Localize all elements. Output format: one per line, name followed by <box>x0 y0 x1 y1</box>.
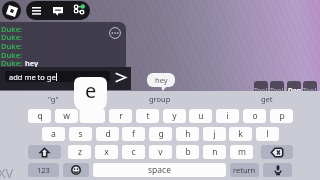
staticText: "g" <box>48 94 59 104</box>
staticText: 123 <box>37 165 50 175</box>
button[interactable]: h <box>176 127 199 141</box>
staticText: Duke: <box>1 24 23 34</box>
button[interactable]: Chat <box>47 1 68 20</box>
button[interactable]: Hotbar slot <box>254 81 268 92</box>
button[interactable]: Roblox menu <box>2 1 21 20</box>
staticText: x <box>104 146 109 158</box>
button[interactable]: m <box>230 145 253 159</box>
staticText: n <box>212 146 218 158</box>
staticText: f <box>132 128 135 140</box>
button[interactable]: a <box>42 127 65 141</box>
button[interactable]: b <box>176 145 199 159</box>
staticText: o <box>252 110 258 122</box>
button[interactable]: g <box>149 127 172 141</box>
button[interactable]: e <box>82 109 105 123</box>
button[interactable]: Hotbar slot <box>303 81 317 92</box>
staticText: Tool <box>303 86 317 92</box>
staticText: Duke: <box>1 50 23 60</box>
button[interactable]: Microphone <box>263 163 292 177</box>
button[interactable]: o <box>243 109 266 123</box>
staticText: p <box>279 110 285 122</box>
button[interactable]: Return <box>230 163 259 177</box>
button[interactable]: u <box>189 109 212 123</box>
staticText: w <box>63 110 70 122</box>
staticText: get <box>261 94 273 104</box>
button[interactable]: Backspace <box>261 145 293 159</box>
button[interactable]: l <box>256 127 279 141</box>
staticText: XV <box>0 164 14 180</box>
staticText: Dog <box>288 86 301 92</box>
button[interactable]: group <box>106 92 213 106</box>
button[interactable]: v <box>149 145 172 159</box>
staticText: u <box>198 110 204 122</box>
button[interactable]: x <box>95 145 118 159</box>
staticText: j <box>213 128 216 140</box>
staticText: t <box>146 110 150 122</box>
staticText: a <box>51 128 56 140</box>
staticText: m <box>238 146 246 158</box>
staticText: k <box>238 128 243 140</box>
button[interactable]: space <box>93 163 226 177</box>
button[interactable]: Send <box>112 69 128 85</box>
button[interactable]: c <box>122 145 145 159</box>
staticText: r <box>119 110 123 122</box>
staticText: hey <box>25 58 39 67</box>
button[interactable]: Hotbar slot <box>270 81 284 92</box>
staticText: z <box>78 146 82 158</box>
staticText: d <box>105 128 111 140</box>
staticText: y <box>172 110 177 122</box>
staticText: space <box>148 164 171 176</box>
staticText: l <box>266 128 269 140</box>
button[interactable]: q <box>28 109 51 123</box>
staticText: add me to ge <box>9 72 56 82</box>
button[interactable]: "g" <box>0 92 106 106</box>
staticText: Tool <box>270 86 284 92</box>
button[interactable]: add me to ge <box>5 71 110 82</box>
button[interactable]: i <box>216 109 239 123</box>
button[interactable]: n <box>203 145 226 159</box>
button[interactable]: Connections <box>68 1 90 20</box>
button[interactable]: j <box>203 127 226 141</box>
staticText: b <box>185 146 191 158</box>
staticText: g <box>158 128 164 140</box>
button[interactable]: d <box>96 127 119 141</box>
button[interactable]: f <box>122 127 145 141</box>
button[interactable]: Emoji <box>63 163 89 177</box>
button[interactable]: r <box>109 109 132 123</box>
staticText: return <box>233 165 256 175</box>
staticText: hey <box>155 75 168 85</box>
staticText: v <box>158 146 163 158</box>
staticText: Duke: <box>1 58 23 67</box>
button[interactable]: Numbers <box>28 163 59 177</box>
staticText: i <box>226 110 229 122</box>
button[interactable]: y <box>163 109 186 123</box>
button[interactable]: s <box>69 127 92 141</box>
staticText: e <box>85 77 97 104</box>
button[interactable]: Shift <box>28 145 61 159</box>
button[interactable]: k <box>229 127 252 141</box>
button[interactable]: p <box>270 109 293 123</box>
button[interactable]: Chat options <box>109 27 121 39</box>
button[interactable]: w <box>55 109 78 123</box>
button[interactable]: Hotbar slot <box>287 81 301 92</box>
button[interactable]: get <box>213 92 320 106</box>
staticText: group <box>149 94 171 104</box>
staticText: s <box>78 128 83 140</box>
button[interactable]: Menu <box>26 1 47 20</box>
staticText: h <box>185 128 191 140</box>
button[interactable]: t <box>136 109 159 123</box>
staticText: Duke: <box>1 32 23 42</box>
staticText: Duke: <box>1 41 23 51</box>
staticText: Tool <box>254 86 268 92</box>
staticText: q <box>37 110 43 122</box>
button[interactable]: z <box>68 145 91 159</box>
staticText: c <box>131 146 136 158</box>
